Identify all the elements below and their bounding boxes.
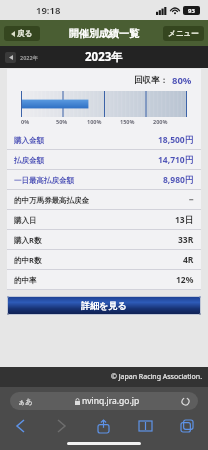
staticText: 50% bbox=[56, 118, 68, 125]
staticText: 回収率： bbox=[134, 75, 168, 86]
button[interactable]: 進む bbox=[41, 416, 82, 436]
button[interactable]: 共有 bbox=[82, 416, 124, 436]
staticText: 13日 bbox=[175, 214, 194, 226]
button[interactable]: 戻る bbox=[0, 416, 41, 436]
button[interactable]: 前の年 bbox=[5, 52, 39, 63]
staticText: 33R bbox=[178, 234, 194, 246]
other: 前の年 bbox=[5, 52, 16, 63]
button[interactable]: メニュー bbox=[163, 26, 204, 41]
staticText: − bbox=[189, 194, 194, 206]
staticText: 93 bbox=[188, 7, 195, 15]
staticText: 19:18 bbox=[36, 4, 61, 17]
staticText: 2023年 bbox=[85, 49, 123, 65]
staticText: 80% bbox=[172, 74, 192, 87]
button[interactable]: 詳細を見る bbox=[7, 296, 201, 315]
staticText: 的中万馬券最高払戻金 bbox=[14, 196, 89, 205]
staticText: 12% bbox=[176, 274, 194, 286]
staticText: 開催別成績一覧 bbox=[69, 27, 139, 40]
staticText: nvinq.jra.go.jp bbox=[82, 395, 140, 407]
button[interactable]: ぁあ bbox=[10, 392, 198, 410]
button[interactable]: 戻る bbox=[4, 26, 40, 41]
staticText: メニュー bbox=[168, 29, 199, 38]
staticText: 150% bbox=[120, 118, 135, 125]
staticText: 払戻金額 bbox=[14, 156, 44, 165]
staticText: 0% bbox=[21, 118, 30, 125]
staticText: 的中率 bbox=[14, 276, 37, 285]
staticText: 的中R数 bbox=[14, 255, 42, 265]
staticText: 100% bbox=[87, 118, 102, 125]
staticText: 詳細を見る bbox=[81, 300, 127, 311]
button[interactable]: ブックマーク bbox=[124, 416, 166, 436]
staticText: 200% bbox=[153, 118, 168, 125]
staticText: 購入金額 bbox=[14, 136, 44, 145]
button[interactable]: タブ bbox=[166, 416, 208, 436]
staticText: 14,710円 bbox=[158, 154, 194, 166]
staticText: 18,500円 bbox=[158, 134, 194, 146]
staticText: 2022年 bbox=[20, 54, 39, 62]
staticText: © Japan Racing Association. bbox=[111, 372, 203, 382]
staticText: 戻る bbox=[17, 29, 33, 38]
staticText: 8,980円 bbox=[163, 174, 194, 186]
staticText: 4R bbox=[183, 254, 194, 266]
staticText: ぁあ bbox=[18, 397, 33, 406]
staticText: 一日最高払戻金額 bbox=[14, 176, 74, 185]
staticText: 購入R数 bbox=[14, 235, 42, 245]
staticText: 購入日 bbox=[14, 216, 37, 225]
